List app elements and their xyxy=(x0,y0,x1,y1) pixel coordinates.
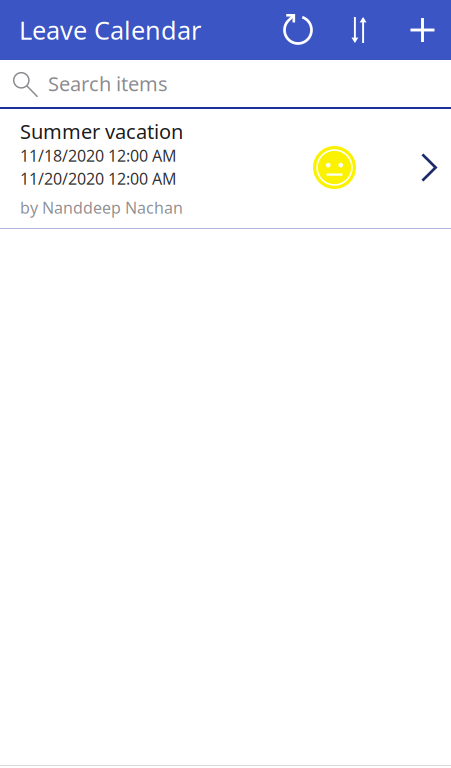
staticText: Summer vacation xyxy=(20,118,183,145)
staticText: Leave Calendar xyxy=(19,13,201,47)
button[interactable]: Search items xyxy=(0,60,451,107)
button[interactable]: Add xyxy=(394,0,451,60)
staticText: by Nanddeep Nachan xyxy=(20,197,183,218)
button[interactable]: Sort xyxy=(326,0,394,60)
button[interactable]: Summer vacation xyxy=(0,109,451,228)
button[interactable]: Refresh xyxy=(270,0,326,60)
staticText: Search items xyxy=(48,70,168,97)
staticText: 11/20/2020 12:00 AM xyxy=(20,168,177,189)
staticText: 11/18/2020 12:00 AM xyxy=(20,145,177,166)
